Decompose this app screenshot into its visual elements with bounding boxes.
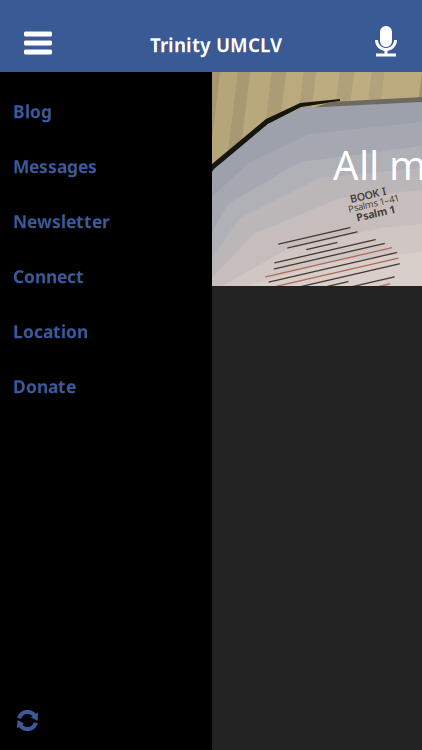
staticText: Location xyxy=(13,320,88,343)
staticText: BOOK I xyxy=(352,220,389,234)
button[interactable]: Newsletter xyxy=(0,194,212,249)
button[interactable]: Location xyxy=(0,304,212,359)
staticText: Donate xyxy=(13,375,76,398)
button[interactable]: Messages xyxy=(0,139,212,194)
staticText: Psalm 1 xyxy=(354,239,394,254)
staticText: Psalms 1–41 xyxy=(348,230,400,243)
button[interactable]: Refresh xyxy=(9,702,46,739)
staticText: All messages xyxy=(333,138,422,191)
button[interactable]: Voice search xyxy=(367,22,405,62)
staticText: Blog xyxy=(13,100,52,123)
button[interactable]: Blog xyxy=(0,84,212,139)
button[interactable]: Donate xyxy=(0,359,212,414)
staticText: Trinity UMCLV xyxy=(150,33,282,57)
button[interactable]: Connect xyxy=(0,249,212,304)
staticText: Connect xyxy=(13,265,84,288)
staticText: Newsletter xyxy=(13,210,110,233)
staticText: Messages xyxy=(13,155,97,178)
button[interactable]: Menu xyxy=(16,23,60,62)
